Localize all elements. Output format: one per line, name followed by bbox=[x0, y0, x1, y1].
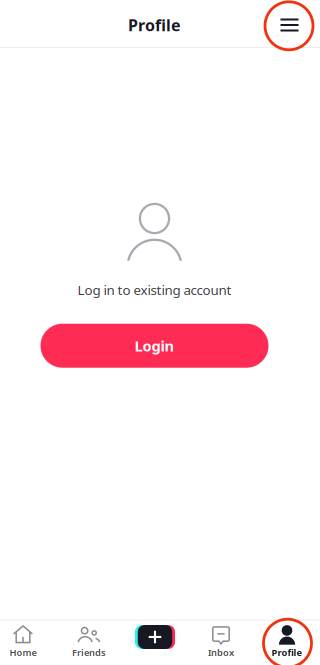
staticText: Home bbox=[9, 646, 36, 659]
staticText: Log in to existing account bbox=[77, 281, 231, 299]
staticText: Friends bbox=[72, 646, 106, 659]
button[interactable]: Login bbox=[40, 324, 268, 368]
button[interactable]: Create bbox=[122, 619, 188, 665]
button[interactable]: Home bbox=[0, 619, 56, 665]
staticText: Profile bbox=[271, 646, 302, 659]
staticText: Login bbox=[134, 336, 174, 355]
staticText: Profile bbox=[128, 14, 181, 36]
button[interactable]: Menu bbox=[266, 0, 313, 47]
staticText: Inbox bbox=[208, 646, 234, 659]
button[interactable]: Profile bbox=[254, 619, 320, 665]
button[interactable]: Friends bbox=[56, 619, 122, 665]
button[interactable]: Inbox bbox=[188, 619, 254, 665]
